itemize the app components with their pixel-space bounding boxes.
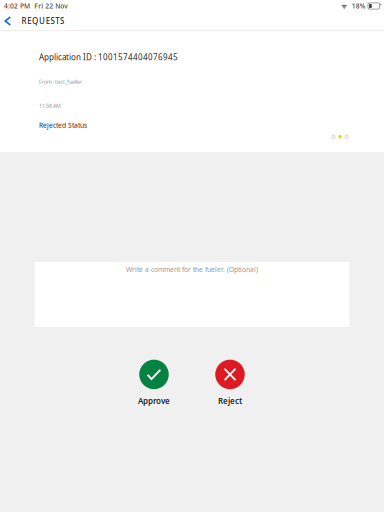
staticText: Rejected Status [39, 121, 87, 130]
staticText: Application ID : 1001574404076945 [39, 52, 178, 62]
staticText: 4:02 PM [4, 2, 30, 10]
staticText: Write a comment for the fueler. (Optiona… [126, 265, 258, 274]
staticText: REQUESTS [21, 16, 64, 26]
button[interactable]: Back [0, 12, 20, 30]
staticText: 11:58 AM [39, 102, 61, 109]
button[interactable]: Reject [192, 359, 268, 407]
staticText: 18% [352, 2, 366, 10]
staticText: Reject [218, 396, 242, 406]
staticText: Fri 22 Nov [34, 2, 68, 10]
staticText: Approve [138, 396, 170, 406]
staticText: From : test_fueller [39, 78, 82, 85]
button[interactable]: Approve [116, 359, 192, 407]
